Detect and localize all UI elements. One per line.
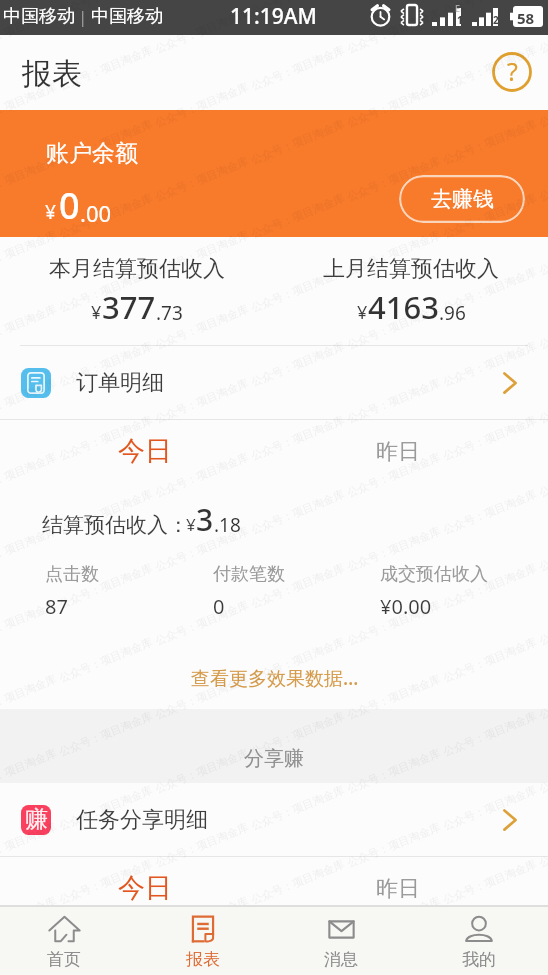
staticText: 账户余额	[46, 139, 138, 168]
staticText: |	[78, 5, 88, 28]
staticText: E	[455, 2, 461, 14]
staticText: 公众号：项目淘金库	[57, 339, 154, 389]
button[interactable]: 查看更多效果数据…	[191, 656, 359, 700]
staticText: ¥	[45, 199, 56, 225]
button[interactable]: 今日	[93, 420, 196, 483]
staticText: 公众号：项目淘金库	[0, 894, 58, 944]
staticText: 公众号：项目淘金库	[345, 6, 442, 56]
staticText: 公众号：项目淘金库	[57, 931, 154, 975]
staticText: .73	[156, 300, 183, 326]
staticText: 订单明细	[76, 369, 164, 397]
staticText: 公众号：项目淘金库	[537, 228, 548, 278]
staticText: 分享赚	[244, 746, 304, 771]
staticText: 公众号：项目淘金库	[57, 857, 154, 907]
staticText: 公众号：项目淘金库	[0, 6, 58, 56]
staticText: 0	[59, 181, 80, 230]
staticText: ?	[507, 54, 518, 88]
staticText: 去赚钱	[431, 186, 494, 212]
button[interactable]: 赚	[0, 783, 548, 856]
staticText: 中国移动	[3, 5, 75, 28]
staticText: 公众号：项目淘金库	[153, 228, 250, 278]
staticText: 1	[457, 13, 463, 27]
button[interactable]: 首页	[0, 907, 128, 975]
staticText: 公众号：项目淘金库	[249, 265, 346, 315]
staticText: 公众号：项目淘金库	[537, 820, 548, 870]
staticText: 公众号：项目淘金库	[345, 228, 442, 278]
staticText: 公众号：项目淘金库	[153, 302, 250, 352]
staticText: 公众号：项目淘金库	[153, 894, 250, 944]
staticText: 公众号：项目淘金库	[57, 191, 154, 241]
staticText: 公众号：项目淘金库	[345, 80, 442, 130]
staticText: 公众号：项目淘金库	[537, 672, 548, 722]
staticText: 公众号：项目淘金库	[153, 450, 250, 500]
button[interactable]: 去赚钱	[399, 175, 525, 223]
button[interactable]: 报表	[139, 907, 267, 975]
staticText: 公众号：项目淘金库	[441, 191, 538, 241]
staticText: 公众号：项目淘金库	[345, 598, 442, 648]
staticText: 87	[45, 593, 68, 620]
staticText: .18	[214, 512, 241, 538]
staticText: 公众号：项目淘金库	[57, 117, 154, 167]
staticText: .00	[80, 198, 112, 228]
staticText: 0	[213, 593, 225, 620]
staticText: 公众号：项目淘金库	[153, 820, 250, 870]
staticText: 公众号：项目淘金库	[0, 154, 58, 204]
button[interactable]: 消息	[277, 907, 405, 975]
staticText: 报表	[22, 55, 82, 93]
button[interactable]: 昨日	[346, 420, 449, 483]
staticText: 公众号：项目淘金库	[57, 43, 154, 93]
staticText: 公众号：项目淘金库	[0, 80, 58, 130]
staticText: 昨日	[376, 875, 420, 903]
staticText: 公众号：项目淘金库	[441, 0, 538, 19]
staticText: 公众号：项目淘金库	[153, 746, 250, 796]
staticText: 公众号：项目淘金库	[345, 376, 442, 426]
staticText: 首页	[47, 949, 81, 970]
staticText: 公众号：项目淘金库	[249, 191, 346, 241]
staticText: ¥	[91, 300, 102, 325]
button[interactable]: 订单明细	[0, 346, 548, 419]
button[interactable]: Help	[489, 49, 535, 95]
staticText: 公众号：项目淘金库	[441, 43, 538, 93]
staticText: 公众号：项目淘金库	[0, 376, 58, 426]
staticText: 公众号：项目淘金库	[249, 0, 346, 19]
staticText: 我的	[462, 949, 496, 970]
staticText: 公众号：项目淘金库	[249, 931, 346, 975]
staticText: 公众号：项目淘金库	[0, 672, 58, 722]
staticText: 今日	[118, 434, 172, 468]
staticText: 58	[517, 8, 535, 28]
staticText: 公众号：项目淘金库	[249, 857, 346, 907]
staticText: 公众号：项目淘金库	[153, 80, 250, 130]
staticText: 公众号：项目淘金库	[441, 783, 538, 833]
staticText: 公众号：项目淘金库	[249, 635, 346, 685]
button[interactable]: 我的	[415, 907, 543, 975]
staticText: 公众号：项目淘金库	[537, 746, 548, 796]
staticText: 公众号：项目淘金库	[57, 561, 154, 611]
staticText: 公众号：项目淘金库	[345, 450, 442, 500]
staticText: 公众号：项目淘金库	[57, 265, 154, 315]
staticText: 公众号：项目淘金库	[153, 524, 250, 574]
staticText: 公众号：项目淘金库	[345, 672, 442, 722]
staticText: 中国移动	[91, 5, 163, 28]
staticText: 公众号：项目淘金库	[57, 413, 154, 463]
staticText: 公众号：项目淘金库	[441, 413, 538, 463]
staticText: 公众号：项目淘金库	[249, 339, 346, 389]
button[interactable]: 今日	[93, 857, 196, 920]
staticText: 上月结算预估收入	[323, 255, 499, 283]
staticText: 公众号：项目淘金库	[537, 6, 548, 56]
button[interactable]: 昨日	[346, 857, 449, 920]
staticText: 公众号：项目淘金库	[0, 524, 58, 574]
staticText: 今日	[118, 871, 172, 905]
staticText: 公众号：项目淘金库	[153, 672, 250, 722]
